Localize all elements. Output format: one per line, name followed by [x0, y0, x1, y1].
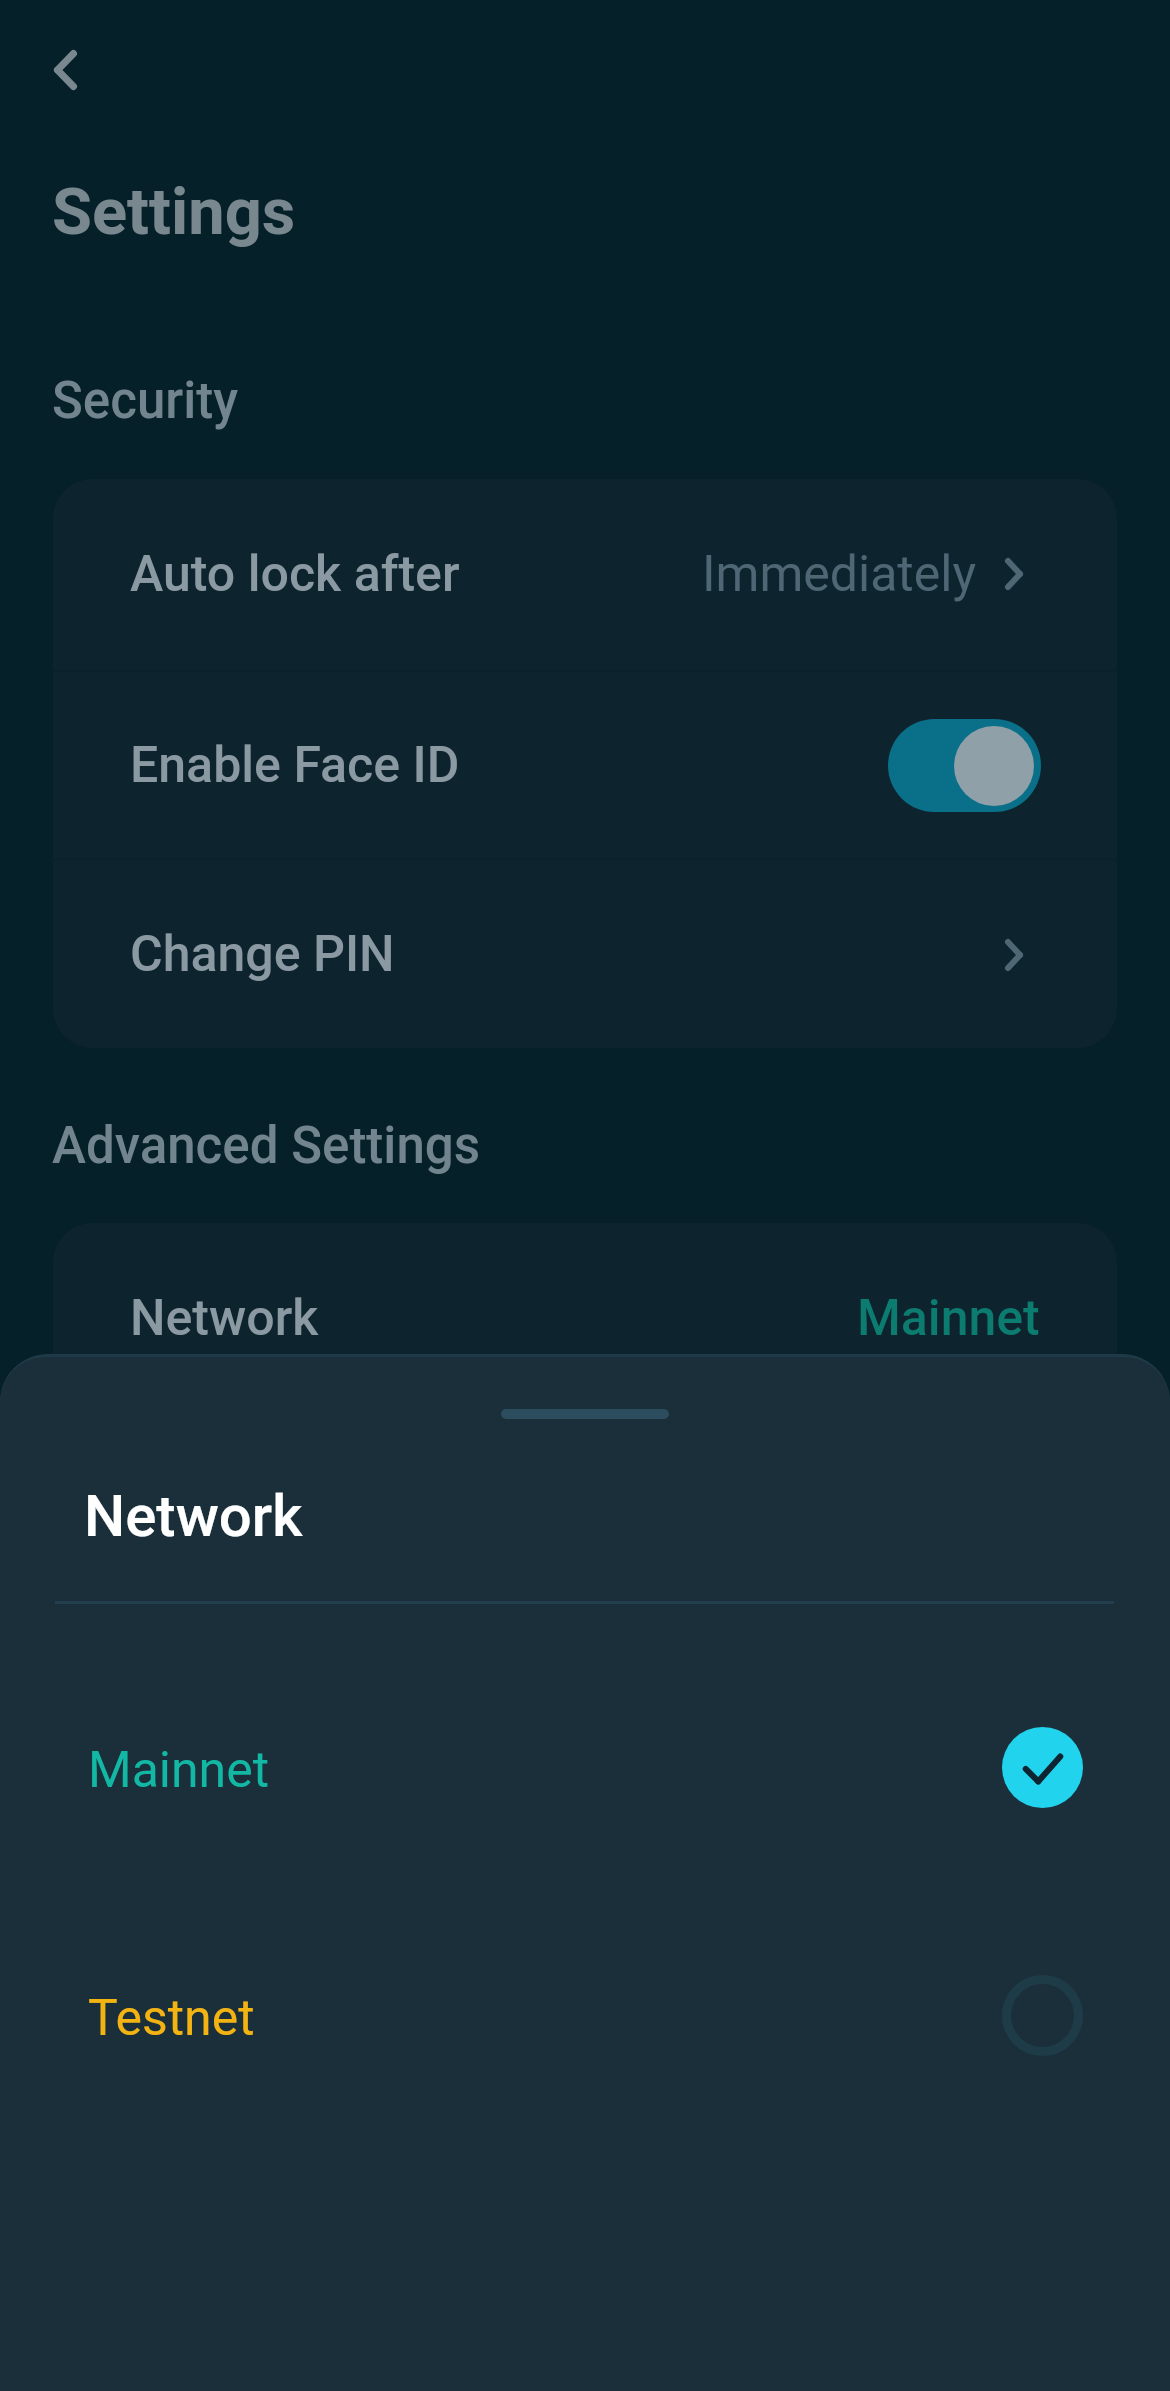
staticText: Mainnet — [857, 1289, 1040, 1348]
button[interactable]: Testnet — [0, 1923, 1170, 2113]
button[interactable]: Auto lock after — [53, 479, 1117, 669]
button[interactable]: Mainnet — [0, 1675, 1170, 1865]
staticText: Advanced Settings — [52, 1116, 481, 1176]
staticText: Enable Face ID — [130, 736, 460, 795]
staticText: Auto lock after — [130, 545, 460, 604]
staticText: Immediately — [702, 545, 977, 604]
button[interactable]: Change PIN — [53, 861, 1117, 1048]
staticText: Network — [130, 1289, 319, 1348]
staticText: Change PIN — [130, 925, 395, 984]
staticText: Testnet — [88, 1989, 255, 2048]
staticText: Settings — [52, 174, 296, 250]
button[interactable]: Enable Face ID — [53, 672, 1117, 858]
staticText: Security — [52, 371, 239, 431]
button[interactable]: Network — [53, 1223, 1117, 1413]
staticText: Network — [84, 1482, 303, 1550]
button[interactable]: Back — [20, 25, 110, 115]
staticText: Mainnet — [88, 1741, 270, 1800]
